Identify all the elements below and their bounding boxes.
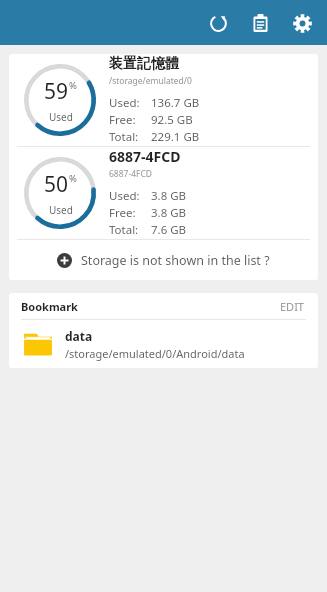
button[interactable]: 59 bbox=[9, 54, 318, 146]
staticText: 136.7 GB bbox=[151, 95, 200, 111]
staticText: Storage is not shown in the list ? bbox=[81, 252, 270, 269]
staticText: 59 bbox=[44, 77, 69, 106]
button[interactable]: Settings bbox=[281, 2, 323, 44]
staticText: Bookmark bbox=[21, 299, 78, 314]
staticText: 3.8 GB bbox=[151, 188, 187, 204]
staticText: 229.1 GB bbox=[151, 129, 200, 145]
button[interactable]: data bbox=[9, 320, 318, 368]
staticText: Total: bbox=[109, 222, 139, 238]
staticText: 6887-4FCD bbox=[109, 168, 153, 180]
staticText: 50 bbox=[44, 170, 69, 199]
staticText: EDIT bbox=[280, 299, 304, 314]
staticText: 7.6 GB bbox=[151, 222, 187, 238]
staticText: 6887-4FCD bbox=[109, 147, 181, 166]
button[interactable]: EDIT bbox=[278, 297, 306, 316]
button[interactable]: Refresh bbox=[197, 2, 239, 44]
staticText: % bbox=[69, 79, 77, 92]
button[interactable]: Clipboard bbox=[239, 2, 281, 44]
staticText: 3.8 GB bbox=[151, 205, 187, 221]
staticText: % bbox=[69, 172, 77, 185]
staticText: 装置記憶體 bbox=[109, 55, 179, 73]
staticText: Used bbox=[49, 110, 73, 124]
staticText: /storage/emulated/0/Android/data bbox=[65, 346, 245, 361]
staticText: Used bbox=[49, 203, 73, 217]
staticText: data bbox=[65, 328, 93, 344]
staticText: Free: bbox=[109, 112, 136, 128]
staticText: 92.5 GB bbox=[151, 112, 193, 128]
staticText: Total: bbox=[109, 129, 139, 145]
staticText: Used: bbox=[109, 188, 140, 204]
staticText: Free: bbox=[109, 205, 136, 221]
staticText: /storage/emulated/0 bbox=[109, 75, 192, 87]
button[interactable]: Storage is not shown in the list ? bbox=[9, 240, 318, 280]
button[interactable]: 50 bbox=[9, 147, 318, 239]
staticText: Used: bbox=[109, 95, 140, 111]
